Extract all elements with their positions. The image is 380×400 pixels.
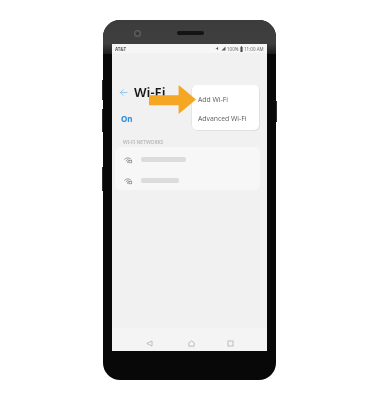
staticText: Advanced Wi-Fi [198,114,247,123]
button[interactable] [112,170,267,190]
button[interactable]: Recents [223,336,237,350]
staticText: On [121,113,133,124]
button[interactable] [112,149,267,169]
staticText: WI-FI NETWORKS [123,139,164,146]
staticText: 100% [227,46,239,52]
button[interactable]: Add Wi-Fi [192,89,259,110]
button[interactable]: Back [142,336,156,350]
staticText: AT&T [115,46,127,52]
button[interactable]: Back [118,87,129,98]
button[interactable]: Home [184,336,198,350]
staticText: 11:00 AM [244,46,264,52]
staticText: Wi-Fi [134,83,166,101]
button[interactable]: Advanced Wi-Fi [192,108,259,129]
staticText: Add Wi-Fi [198,95,229,104]
